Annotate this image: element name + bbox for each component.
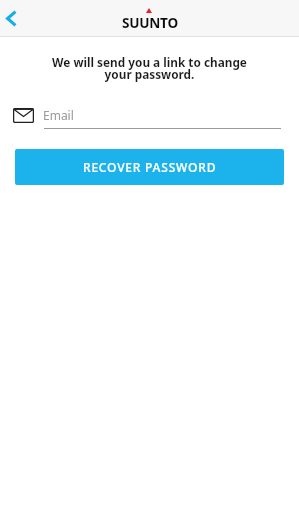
- staticText: We will send you a link to change: [6, 54, 293, 70]
- staticText: Email: [43, 107, 74, 123]
- button[interactable]: Email: [0, 104, 299, 138]
- button[interactable]: Back: [0, 0, 38, 36]
- staticText: RECOVER PASSWORD: [83, 159, 217, 175]
- button[interactable]: RECOVER PASSWORD: [15, 149, 284, 185]
- staticText: your password.: [6, 66, 293, 82]
- other: Email: [13, 108, 34, 123]
- staticText: SUUNTO: [122, 13, 178, 32]
